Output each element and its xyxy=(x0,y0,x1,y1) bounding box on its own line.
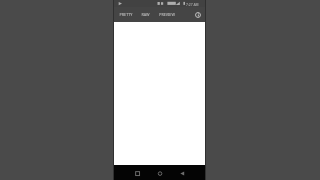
button[interactable]: Back xyxy=(172,165,195,180)
button[interactable]: PREVIEW xyxy=(156,7,177,22)
staticText: RAW xyxy=(141,12,150,17)
button[interactable]: PRETTY xyxy=(116,7,135,22)
button[interactable]: Recent apps xyxy=(114,165,149,180)
staticText: PREVIEW xyxy=(159,12,175,17)
staticText: 7:27 AM xyxy=(186,2,199,6)
button[interactable]: RAW xyxy=(135,7,156,22)
button[interactable]: Home xyxy=(149,165,172,180)
button[interactable]: About xyxy=(191,7,205,22)
staticText: PRETTY xyxy=(119,12,133,17)
